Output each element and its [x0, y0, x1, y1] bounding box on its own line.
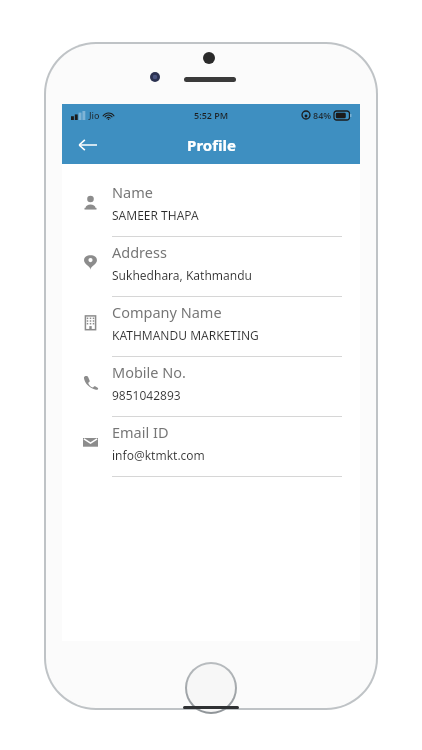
staticText: info@ktmkt.com: [112, 447, 205, 463]
staticText: 84%: [313, 109, 332, 121]
staticText: 9851042893: [112, 387, 181, 403]
button[interactable]: Email ID: [62, 417, 360, 477]
button[interactable]: Address: [62, 237, 360, 297]
button[interactable]: Company Name: [62, 297, 360, 357]
staticText: Sukhedhara, Kathmandu: [112, 267, 252, 283]
button[interactable]: Name: [62, 177, 360, 237]
staticText: Company Name: [112, 302, 222, 322]
staticText: Address: [112, 242, 167, 262]
staticText: KATHMANDU MARKETING: [112, 327, 259, 343]
staticText: 5:52 PM: [194, 109, 229, 121]
button[interactable]: Home: [187, 664, 235, 712]
staticText: Email ID: [112, 422, 169, 442]
button[interactable]: Mobile No.: [62, 357, 360, 417]
staticText: Profile: [187, 135, 236, 155]
staticText: Jio: [89, 109, 100, 121]
staticText: SAMEER THAPA: [112, 207, 199, 223]
staticText: Name: [112, 182, 153, 202]
staticText: Mobile No.: [112, 362, 186, 382]
button[interactable]: Back: [70, 128, 104, 162]
